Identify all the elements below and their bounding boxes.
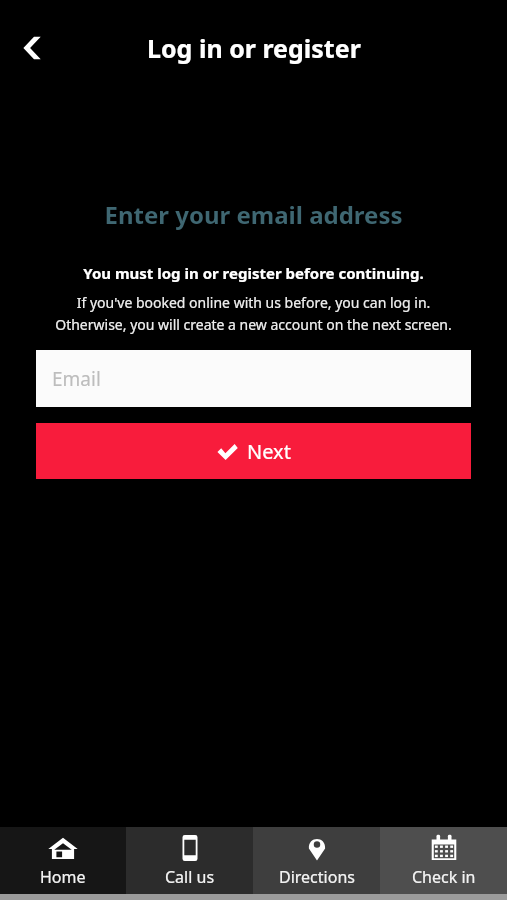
staticText: Email	[52, 366, 101, 392]
staticText: Home	[40, 866, 86, 888]
button[interactable]: Email	[36, 350, 471, 407]
button[interactable]: Check in	[380, 827, 507, 894]
staticText: Call us	[165, 866, 215, 888]
button[interactable]: Call us	[126, 827, 253, 894]
staticText: Check in	[412, 866, 476, 888]
staticText: If you've booked online with us before, …	[4, 293, 503, 334]
staticText: You must log in or register before conti…	[0, 263, 507, 283]
button[interactable]: Next	[36, 423, 471, 479]
button[interactable]: Back	[6, 20, 62, 76]
staticText: Directions	[279, 866, 355, 888]
staticText: Next	[247, 438, 291, 465]
staticText: Enter your email address	[0, 198, 507, 231]
staticText: Log in or register	[147, 31, 361, 65]
button[interactable]: Directions	[253, 827, 380, 894]
button[interactable]: Home	[0, 827, 126, 894]
